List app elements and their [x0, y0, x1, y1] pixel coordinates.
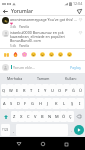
button[interactable]: Emoji: [65, 50, 74, 59]
staticText: 12:04: [73, 1, 83, 6]
button[interactable]: Shift: [1, 111, 11, 122]
button[interactable]: Emoji: [47, 50, 56, 59]
staticText: A: [3, 101, 6, 106]
button[interactable]: O: [56, 84, 63, 96]
staticText: Paylaş: [70, 65, 81, 70]
button[interactable]: Q: [1, 84, 7, 96]
button[interactable]: Kullanı: [57, 76, 85, 81]
button[interactable]: X: [18, 111, 25, 122]
staticText: Kullanı: [65, 76, 77, 81]
button[interactable]: Home: [38, 139, 48, 149]
staticText: N: [48, 114, 52, 119]
staticText: K: [55, 101, 58, 106]
button[interactable]: Y: [42, 84, 49, 96]
button[interactable]: Backspace: [74, 111, 84, 122]
staticText: J: [47, 101, 49, 106]
button[interactable]: Emoji: [29, 50, 38, 59]
button[interactable]: Emoji: [20, 50, 29, 59]
button[interactable]: Ğ: [70, 84, 77, 96]
staticText: Yanıtla: [19, 44, 29, 48]
staticText: Ş: [71, 101, 74, 106]
staticText: M: [55, 114, 59, 119]
button[interactable]: ?123: [1, 124, 10, 136]
staticText: F: [24, 101, 27, 106]
button[interactable]: E: [14, 84, 21, 96]
button[interactable]: Tamam: [29, 76, 57, 81]
staticText: Yanıtla: [19, 25, 29, 29]
staticText: istanbul0000 Bonusunuz en çok kazandıran…: [10, 30, 65, 43]
button[interactable]: Comma: [11, 124, 15, 136]
button[interactable]: Emoji: [11, 50, 20, 59]
button[interactable]: Back: [2, 8, 9, 15]
staticText: Y: [44, 88, 47, 93]
button[interactable]: Ş: [68, 98, 76, 109]
staticText: Tamam: [37, 76, 50, 81]
button[interactable]: Send: [74, 125, 84, 135]
staticText: H: [39, 101, 42, 106]
button[interactable]: Paylaş: [68, 63, 83, 72]
button[interactable]: Back: [14, 139, 24, 149]
button[interactable]: Send: [76, 8, 83, 15]
button[interactable]: D: [15, 98, 22, 109]
staticText: I: [79, 101, 81, 106]
staticText: Q: [2, 88, 6, 93]
button[interactable]: W: [7, 84, 14, 96]
button[interactable]: S: [8, 98, 15, 109]
button[interactable]: Ö: [60, 111, 67, 122]
button[interactable]: Z: [11, 111, 18, 122]
button[interactable]: U: [49, 84, 56, 96]
button[interactable]: Yanıtla: [19, 44, 29, 48]
staticText: R: [23, 88, 26, 93]
button[interactable]: F: [22, 98, 29, 109]
staticText: ,: [13, 128, 14, 133]
button[interactable]: Yanıtla: [19, 25, 29, 29]
staticText: 3 dk: [10, 25, 17, 29]
staticText: Z: [13, 114, 16, 119]
staticText: Ü: [79, 88, 82, 93]
button[interactable]: M: [53, 111, 60, 122]
staticText: 5 dk: [10, 44, 17, 48]
button[interactable]: istanbul0000 Bonusunuz en çok kazandıran…: [0, 29, 85, 48]
staticText: L: [63, 101, 66, 106]
staticText: O: [58, 88, 62, 93]
staticText: B: [41, 114, 44, 119]
button[interactable]: G: [29, 98, 36, 109]
button[interactable]: V: [32, 111, 39, 122]
button[interactable]: J: [44, 98, 52, 109]
button[interactable]: anonimasonmeypage You've got this! 💛: [0, 16, 85, 29]
button[interactable]: K: [52, 98, 60, 109]
button[interactable]: Period: [69, 124, 73, 136]
button[interactable]: Emoji: [2, 50, 11, 59]
button[interactable]: Ç: [67, 111, 74, 122]
staticText: Ö: [62, 114, 66, 119]
button[interactable]: Merhaba: [0, 76, 29, 81]
button[interactable]: B: [39, 111, 46, 122]
button[interactable]: C: [25, 111, 32, 122]
staticText: G: [31, 101, 34, 106]
button[interactable]: Emoji: [56, 50, 65, 59]
button[interactable]: Like: [78, 30, 83, 35]
button[interactable]: R: [21, 84, 28, 96]
staticText: ?123: [2, 128, 9, 132]
button[interactable]: L: [60, 98, 68, 109]
staticText: P: [65, 88, 68, 93]
button[interactable]: I: [76, 98, 84, 109]
button[interactable]: Recents: [61, 139, 71, 149]
button[interactable]: H: [36, 98, 44, 109]
staticText: U: [51, 88, 54, 93]
button[interactable]: A: [1, 98, 8, 109]
button[interactable]: P: [63, 84, 70, 96]
button[interactable]: N: [46, 111, 53, 122]
button[interactable]: Ü: [77, 84, 84, 96]
button[interactable]: Emoji: [38, 50, 47, 59]
button[interactable]: I: [35, 84, 42, 96]
staticText: C: [27, 114, 30, 119]
button[interactable]: T: [28, 84, 35, 96]
staticText: W: [9, 88, 13, 93]
staticText: S: [10, 101, 13, 106]
staticText: .: [71, 128, 72, 133]
staticText: E: [16, 88, 19, 93]
staticText: Yorum ekle...: [13, 65, 35, 70]
button[interactable]: Like: [78, 17, 83, 22]
